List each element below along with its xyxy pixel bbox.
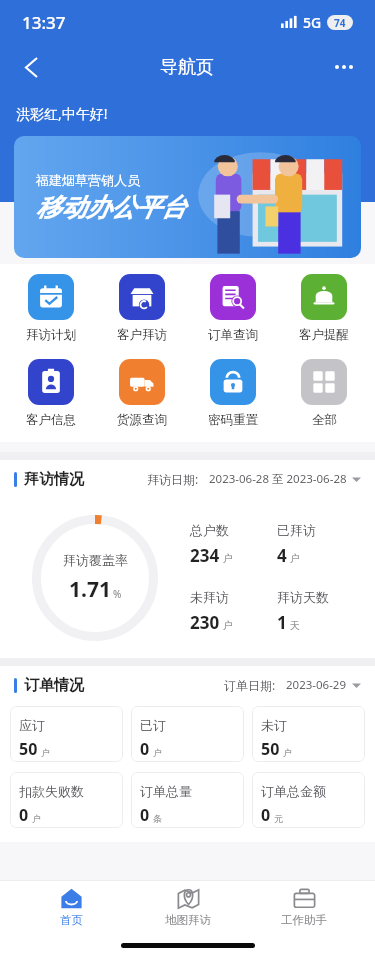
staticText: 地图拜访	[165, 913, 211, 927]
staticText: 0	[140, 804, 150, 826]
staticText: 密码重置	[208, 412, 258, 428]
button[interactable]: 全部	[284, 359, 364, 428]
staticText: 客户信息	[26, 412, 76, 428]
button[interactable]: 订单日期:	[224, 677, 361, 693]
staticText: 拜访情况	[24, 470, 84, 489]
button[interactable]: 首页	[26, 887, 116, 927]
staticText: 户	[153, 747, 162, 758]
staticText: 50	[19, 738, 38, 760]
staticText: 户	[32, 813, 41, 824]
staticText: 拜访覆盖率	[63, 552, 128, 568]
staticText: 户	[223, 552, 233, 565]
staticText: 订单日期:	[224, 677, 276, 693]
staticText: 订单查询	[208, 327, 258, 343]
staticText: 230	[190, 611, 220, 634]
staticText: 2023-06-28 至 2023-06-28	[209, 471, 347, 487]
staticText: 元	[274, 813, 283, 824]
staticText: 户	[223, 619, 233, 632]
button[interactable]: 密码重置	[193, 359, 273, 428]
staticText: 福建烟草营销人员	[36, 172, 140, 188]
button[interactable]: 拜访计划	[11, 274, 91, 343]
staticText: 首页	[60, 913, 83, 927]
staticText: 应订	[19, 717, 45, 733]
button[interactable]: 地图拜访	[143, 887, 233, 927]
staticText: 13:37	[22, 11, 66, 34]
staticText: 天	[290, 619, 300, 632]
staticText: 工作助手	[281, 913, 327, 927]
button[interactable]: 订单总金额	[252, 772, 365, 828]
button[interactable]: 未订	[252, 706, 365, 762]
staticText: 全部	[312, 412, 337, 428]
button[interactable]: More options	[325, 48, 363, 86]
staticText: 条	[153, 813, 162, 824]
staticText: 0	[19, 804, 29, 826]
staticText: 移动办公平台	[36, 192, 186, 223]
staticText: 货源查询	[117, 412, 167, 428]
button[interactable]: 订单查询	[193, 274, 273, 343]
staticText: 未订	[261, 717, 287, 733]
button[interactable]: 应订	[10, 706, 123, 762]
button[interactable]: 工作助手	[259, 887, 349, 927]
staticText: 5G	[303, 13, 322, 32]
staticText: %	[113, 587, 122, 601]
staticText: 拜访计划	[26, 327, 76, 343]
staticText: 234	[190, 544, 220, 567]
button[interactable]: 福建烟草营销人员	[14, 136, 361, 258]
button[interactable]: 货源查询	[102, 359, 182, 428]
staticText: 拜访日期:	[147, 471, 199, 487]
staticText: 洪彩红,中午好!	[16, 104, 108, 123]
staticText: 扣款失败数	[19, 783, 84, 799]
button[interactable]: 客户信息	[11, 359, 91, 428]
staticText: 导航页	[160, 56, 214, 79]
staticText: 74	[334, 16, 346, 30]
staticText: 户	[41, 747, 50, 758]
staticText: 1	[277, 611, 287, 634]
staticText: 户	[290, 552, 300, 565]
staticText: 已拜访	[277, 522, 316, 538]
staticText: 1.71	[69, 575, 111, 604]
staticText: 未拜访	[190, 589, 229, 605]
staticText: 户	[283, 747, 292, 758]
staticText: 订单情况	[24, 676, 84, 695]
button[interactable]: 拜访日期:	[147, 471, 361, 487]
staticText: 4	[277, 544, 287, 567]
staticText: 客户提醒	[299, 327, 349, 343]
staticText: 客户拜访	[117, 327, 167, 343]
staticText: 拜访天数	[277, 589, 329, 605]
staticText: 0	[261, 804, 271, 826]
button[interactable]: 客户提醒	[284, 274, 364, 343]
staticText: 50	[261, 738, 280, 760]
staticText: 订单总量	[140, 783, 192, 799]
button[interactable]: 客户拜访	[102, 274, 182, 343]
button[interactable]: 已订	[131, 706, 244, 762]
staticText: 总户数	[190, 522, 229, 538]
staticText: 2023-06-29	[286, 677, 347, 693]
button[interactable]: 扣款失败数	[10, 772, 123, 828]
button[interactable]: 订单总量	[131, 772, 244, 828]
staticText: 订单总金额	[261, 783, 326, 799]
staticText: 0	[140, 738, 150, 760]
staticText: 已订	[140, 717, 166, 733]
button[interactable]: Back	[12, 48, 50, 86]
